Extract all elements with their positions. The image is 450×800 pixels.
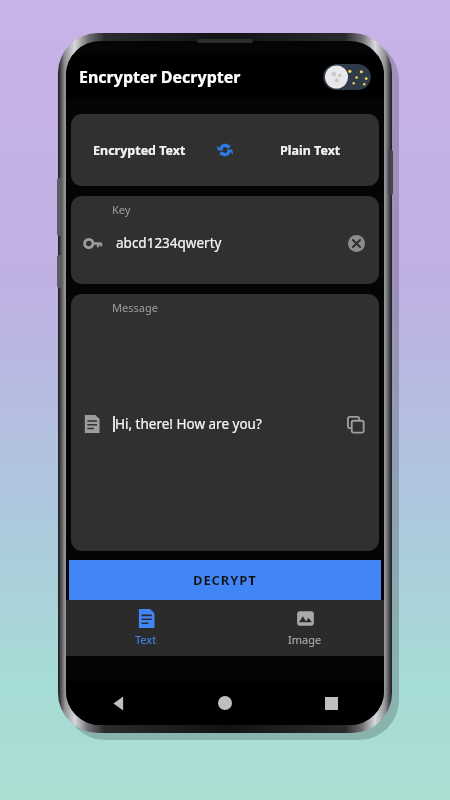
button[interactable]: Recent apps — [278, 681, 384, 725]
button[interactable]: Text — [66, 600, 225, 656]
button[interactable]: Back — [66, 681, 172, 725]
button[interactable]: Clear key — [345, 232, 367, 254]
staticText: abcd1234qwerty — [116, 234, 345, 252]
staticText: Message — [112, 300, 158, 315]
button[interactable]: Key — [71, 196, 379, 284]
button[interactable]: Image — [225, 600, 384, 656]
button[interactable]: Home — [172, 681, 278, 725]
button[interactable]: Encrypted Text — [71, 114, 208, 186]
staticText: Encrypter Decrypter — [79, 66, 241, 88]
staticText: Plain Text — [280, 142, 341, 159]
button[interactable]: Copy message — [343, 412, 367, 436]
staticText: Key — [112, 202, 131, 217]
button[interactable]: Toggle night mode — [323, 64, 371, 90]
button[interactable]: Swap encryption direction — [208, 133, 242, 167]
button[interactable]: Message — [71, 294, 379, 551]
staticText: Hi, there! How are you? — [115, 415, 262, 433]
staticText: DECRYPT — [193, 571, 257, 589]
staticText: Encrypted Text — [93, 142, 186, 159]
button[interactable]: Plain Text — [242, 114, 379, 186]
staticText: Image — [288, 632, 322, 647]
button[interactable]: DECRYPT — [69, 560, 381, 600]
staticText: Text — [135, 632, 157, 647]
